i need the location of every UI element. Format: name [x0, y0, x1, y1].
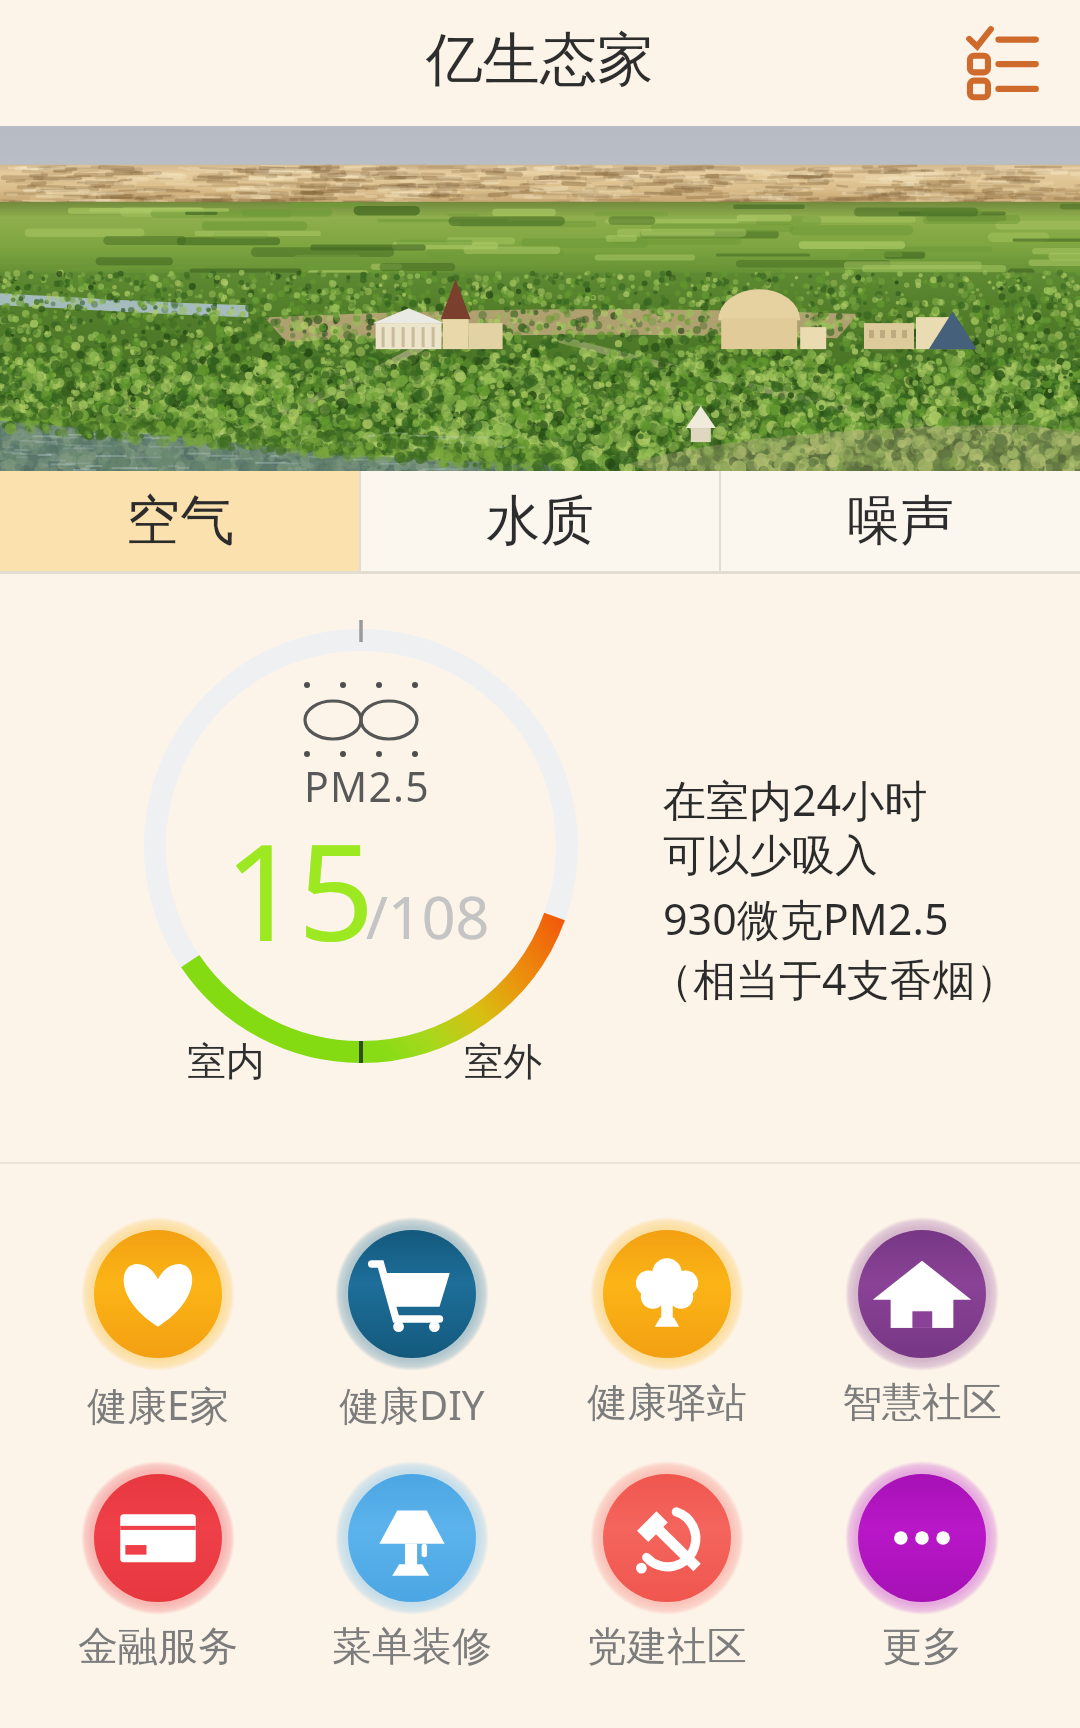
staticText: /108	[366, 876, 490, 956]
staticText: 室外	[464, 1037, 542, 1086]
staticText: 水质	[486, 487, 594, 555]
staticText: 930微克PM2.5	[663, 889, 949, 948]
staticText: 空气	[126, 487, 234, 555]
staticText: 健康E家	[87, 1377, 230, 1432]
staticText: 健康DIY	[339, 1377, 485, 1432]
staticText: （相当于4支香烟）	[650, 949, 1019, 1008]
staticText: 15	[224, 798, 372, 981]
staticText: 可以少吸入	[663, 829, 878, 883]
button[interactable]: Eco park banner photo	[0, 126, 1080, 471]
button[interactable]: 健康DIY	[285, 1214, 539, 1432]
button[interactable]: Checklist	[960, 21, 1044, 105]
button[interactable]: 智慧社区	[794, 1214, 1049, 1427]
button[interactable]: 菜单装修	[285, 1458, 539, 1671]
staticText: 菜单装修	[332, 1621, 492, 1671]
button[interactable]: 党建社区	[539, 1458, 794, 1671]
staticText: PM2.5	[304, 758, 430, 814]
staticText: 噪声	[846, 487, 954, 555]
button[interactable]: 金融服务	[31, 1458, 285, 1671]
button[interactable]: 水质	[360, 471, 720, 571]
staticText: 智慧社区	[842, 1377, 1002, 1427]
staticText: 更多	[882, 1621, 962, 1671]
staticText: 室内	[187, 1037, 265, 1086]
button[interactable]: 噪声	[720, 471, 1080, 571]
staticText: 党建社区	[587, 1621, 747, 1671]
button[interactable]: 健康驿站	[539, 1214, 794, 1427]
staticText: 亿生态家	[426, 24, 654, 96]
button[interactable]: 健康E家	[31, 1214, 285, 1432]
button[interactable]: 空气	[0, 471, 360, 571]
button[interactable]: 更多	[794, 1458, 1049, 1671]
staticText: 金融服务	[78, 1621, 238, 1671]
staticText: 健康驿站	[587, 1377, 747, 1427]
staticText: 在室内24小时	[663, 770, 928, 829]
